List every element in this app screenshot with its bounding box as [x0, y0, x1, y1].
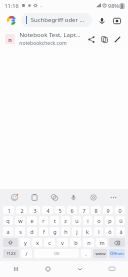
staticText: 2	[20, 207, 24, 214]
staticText: w	[18, 217, 23, 224]
button[interactable]: i	[83, 216, 92, 225]
button[interactable]: .	[81, 249, 91, 258]
staticText: p	[108, 217, 112, 224]
button[interactable]: Emoji	[8, 191, 21, 204]
button[interactable]: Voice input	[67, 191, 80, 204]
staticText: c	[48, 239, 51, 246]
button[interactable]: 2	[16, 206, 27, 214]
staticText: www	[95, 251, 106, 257]
button[interactable]: n	[0, 29, 128, 49]
button[interactable]: 3	[29, 206, 40, 214]
staticText: ·	[40, 2, 42, 9]
staticText: /	[25, 250, 28, 257]
button[interactable]: 8	[91, 206, 101, 214]
button[interactable]: 5	[55, 206, 65, 214]
button[interactable]: y	[20, 238, 30, 247]
button[interactable]: l	[94, 227, 103, 236]
staticText: b	[74, 239, 78, 246]
button[interactable]: e	[27, 216, 37, 225]
button[interactable]: 9	[103, 206, 113, 214]
staticText: z	[64, 217, 67, 224]
staticText: h	[64, 228, 68, 235]
button[interactable]: ü	[116, 216, 125, 225]
staticText: ä	[119, 228, 123, 235]
button[interactable]: Settings	[87, 191, 100, 204]
button[interactable]: Clipboard	[28, 191, 41, 204]
button[interactable]: j	[72, 227, 81, 236]
staticText: g	[53, 228, 57, 235]
button[interactable]: 6	[67, 206, 77, 214]
staticText: 4	[46, 207, 50, 214]
button[interactable]: o	[94, 216, 103, 225]
staticText: 8	[94, 207, 98, 214]
staticText: 9	[106, 207, 110, 214]
button[interactable]: h	[61, 227, 70, 236]
staticText: a	[6, 228, 10, 235]
button[interactable]: Home	[32, 261, 64, 277]
staticText: 0	[118, 207, 122, 214]
staticText: 6	[70, 207, 74, 214]
button[interactable]: Stickers	[48, 191, 61, 204]
button[interactable]: Edit	[111, 33, 124, 46]
staticText: d	[30, 228, 34, 235]
button[interactable]: r	[39, 216, 48, 225]
button[interactable]: k	[83, 227, 92, 236]
button[interactable]: t	[50, 216, 59, 225]
button[interactable]: 4	[42, 206, 53, 214]
button[interactable]: q	[3, 216, 13, 225]
button[interactable]: Hide keyboard	[96, 261, 128, 277]
button[interactable]: ?123	[3, 249, 19, 258]
button[interactable]: Öffnen	[109, 249, 125, 258]
staticText: v	[61, 239, 64, 246]
staticText: j	[76, 228, 78, 235]
staticText: m	[99, 239, 105, 246]
button[interactable]: x	[32, 238, 42, 247]
staticText: Notebook Test, Lapt…	[19, 31, 81, 39]
button[interactable]: f	[39, 227, 48, 236]
button[interactable]: ä	[116, 227, 125, 236]
button[interactable]: a	[3, 227, 13, 236]
button[interactable]: Google Lens	[110, 14, 123, 27]
staticText: DE	[54, 251, 60, 257]
staticText: ü	[119, 217, 123, 224]
button[interactable]: n	[83, 238, 94, 247]
button[interactable]: Recents	[0, 261, 32, 277]
staticText: 1	[7, 207, 11, 214]
button[interactable]: g	[50, 227, 59, 236]
button[interactable]: DE	[34, 249, 79, 258]
button[interactable]: p	[105, 216, 114, 225]
staticText: k	[86, 228, 89, 235]
button[interactable]: b	[70, 238, 81, 247]
button[interactable]: s	[15, 227, 25, 236]
button[interactable]: Copy	[98, 33, 111, 46]
button[interactable]: c	[44, 238, 55, 247]
button[interactable]: /	[21, 249, 32, 258]
button[interactable]: 7	[79, 206, 89, 214]
staticText: 3	[33, 207, 37, 214]
button[interactable]: www	[93, 249, 107, 258]
button[interactable]: Share	[85, 33, 98, 46]
button[interactable]: m	[96, 238, 107, 247]
button[interactable]: More options	[107, 191, 120, 204]
staticText: 7	[82, 207, 86, 214]
staticText: .	[85, 250, 87, 257]
staticText: o	[97, 217, 101, 224]
button[interactable]	[109, 238, 125, 247]
staticText: 98%	[108, 2, 119, 9]
button[interactable]: u	[72, 216, 81, 225]
button[interactable]: 0	[115, 206, 125, 214]
button[interactable]: Back	[64, 261, 96, 277]
button[interactable]: v	[57, 238, 68, 247]
button[interactable]: Voice search	[95, 14, 108, 27]
button[interactable]: 1	[3, 206, 14, 214]
button[interactable]: ö	[105, 227, 114, 236]
button[interactable]: w	[15, 216, 25, 225]
staticText: n	[87, 239, 91, 246]
staticText: r	[42, 217, 45, 224]
button[interactable]	[3, 238, 18, 247]
button[interactable]: Suchbegriff oder Webadresse	[21, 13, 92, 27]
button[interactable]: z	[61, 216, 70, 225]
button[interactable]: Google	[5, 14, 18, 27]
staticText: f	[43, 228, 45, 235]
button[interactable]: d	[27, 227, 37, 236]
